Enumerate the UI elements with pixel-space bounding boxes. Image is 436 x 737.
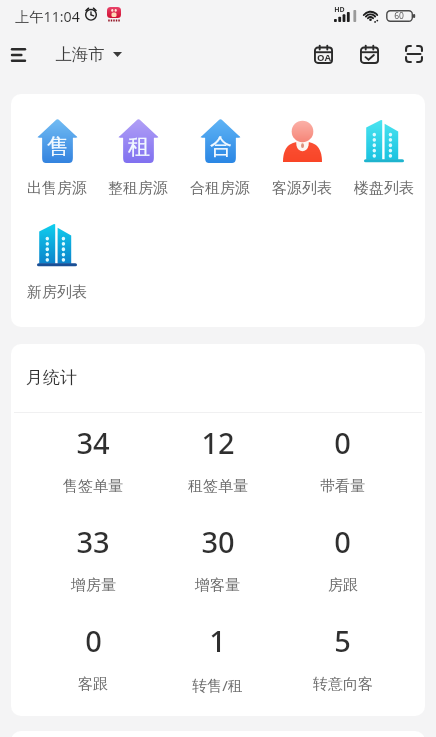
button[interactable]: 上海市: [55, 38, 122, 70]
staticText: OA: [317, 51, 331, 64]
staticText: 客源列表: [272, 179, 332, 198]
staticText: 带看量: [320, 477, 365, 496]
staticText: 34: [76, 423, 110, 462]
button[interactable]: 客源列表: [261, 119, 343, 198]
button[interactable]: 楼盘列表: [343, 119, 425, 198]
staticText: 售签单量: [63, 477, 123, 496]
button[interactable]: 新房列表: [16, 223, 97, 302]
staticText: 0: [334, 522, 351, 561]
button[interactable]: 33: [31, 522, 155, 597]
button[interactable]: 合: [179, 119, 261, 198]
staticText: 租签单量: [188, 477, 248, 496]
staticText: 新房列表: [27, 283, 87, 302]
staticText: 增房量: [71, 576, 116, 595]
staticText: 60: [394, 10, 404, 22]
staticText: 30: [201, 522, 235, 561]
button[interactable]: 34: [31, 423, 155, 498]
button[interactable]: 1: [155, 621, 280, 696]
staticText: 售: [47, 133, 69, 161]
button[interactable]: 0: [280, 522, 405, 597]
staticText: 0: [334, 423, 351, 462]
button[interactable]: 30: [155, 522, 280, 597]
button[interactable]: 0: [280, 423, 405, 498]
staticText: 楼盘列表: [354, 179, 414, 198]
staticText: 33: [76, 522, 110, 561]
button[interactable]: Schedule: [353, 38, 385, 70]
button[interactable]: 12: [155, 423, 280, 498]
staticText: 整租房源: [108, 179, 168, 198]
button[interactable]: Scan: [398, 38, 430, 70]
button[interactable]: 售: [16, 119, 97, 198]
staticText: 上午11:04: [15, 7, 80, 26]
button[interactable]: 租: [97, 119, 179, 198]
staticText: 转售/租: [192, 675, 243, 695]
staticText: 合: [210, 133, 232, 161]
staticText: 上海市: [55, 44, 105, 65]
staticText: 5: [334, 621, 351, 660]
button[interactable]: 5: [280, 621, 405, 696]
staticText: 月统计: [26, 367, 77, 388]
staticText: HD: [334, 5, 345, 15]
button[interactable]: Menu: [2, 39, 34, 71]
button[interactable]: 0: [31, 621, 155, 696]
button[interactable]: OA: [307, 38, 339, 70]
staticText: 租: [128, 133, 150, 161]
staticText: 客跟: [78, 675, 108, 694]
staticText: 转意向客: [313, 675, 373, 694]
staticText: 0: [85, 621, 102, 660]
staticText: 房跟: [328, 576, 358, 595]
staticText: 12: [201, 423, 235, 462]
staticText: 1: [209, 621, 226, 660]
staticText: 增客量: [195, 576, 240, 595]
staticText: 出售房源: [27, 179, 87, 198]
staticText: 合租房源: [190, 179, 250, 198]
